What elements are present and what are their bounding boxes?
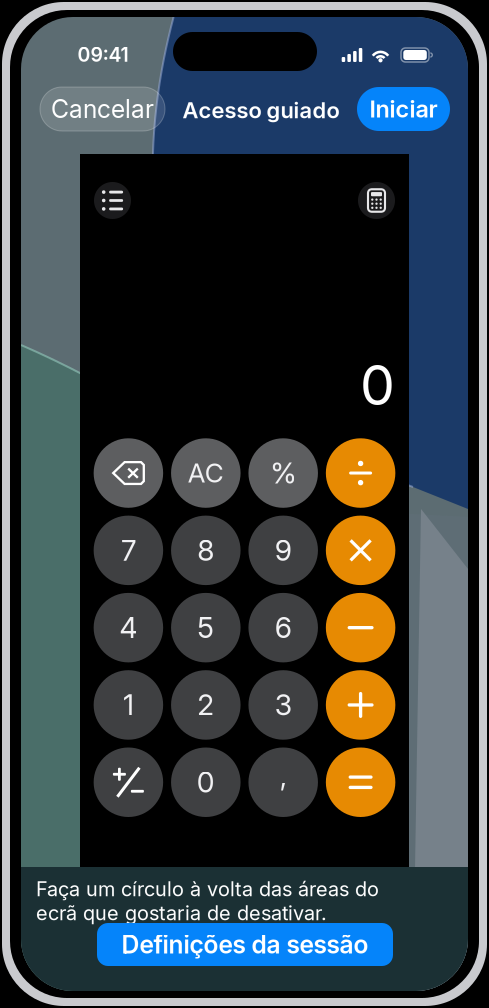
button[interactable]: 6 <box>248 593 318 662</box>
button[interactable]: AC <box>171 438 241 508</box>
staticText: Definições da sessão <box>121 929 368 959</box>
staticText: 6 <box>275 610 292 645</box>
button[interactable] <box>326 438 395 508</box>
button[interactable]: , <box>248 747 318 817</box>
staticText: % <box>270 456 296 490</box>
button[interactable]: Cancelar <box>40 87 165 131</box>
staticText: AC <box>188 457 224 489</box>
staticText: 2 <box>197 688 214 722</box>
button[interactable] <box>326 593 395 662</box>
button[interactable] <box>94 438 163 508</box>
button[interactable]: 9 <box>248 516 318 585</box>
button[interactable] <box>326 516 395 585</box>
button[interactable]: Iniciar <box>357 87 450 131</box>
button[interactable]: % <box>248 438 318 508</box>
staticText: Faça um círculo à volta das áreas do ecr… <box>36 877 379 925</box>
button[interactable]: 8 <box>171 516 241 585</box>
staticText: 7 <box>121 533 136 568</box>
button[interactable]: 3 <box>248 670 318 740</box>
button[interactable]: 0 <box>171 747 241 817</box>
staticText: 0 <box>360 351 395 418</box>
staticText: 1 <box>123 688 134 722</box>
staticText: Acesso guiado <box>182 97 339 124</box>
button[interactable]: History <box>94 182 131 219</box>
staticText: 0 <box>197 765 215 799</box>
button[interactable]: Definições da sessão <box>97 923 393 966</box>
button[interactable]: Calculator keypad <box>358 182 395 219</box>
staticText: , <box>280 758 287 792</box>
button[interactable] <box>326 747 395 817</box>
staticText: 3 <box>275 688 292 722</box>
button[interactable]: 7 <box>94 516 163 585</box>
staticText: 4 <box>119 610 137 645</box>
staticText: 9 <box>275 533 292 568</box>
staticText: Iniciar <box>369 95 437 123</box>
staticText: Cancelar <box>51 94 154 124</box>
button[interactable]: 1 <box>94 670 163 740</box>
staticText: 09:41 <box>77 43 128 67</box>
button[interactable] <box>326 670 395 740</box>
button[interactable] <box>94 747 163 817</box>
button[interactable]: 5 <box>171 593 241 662</box>
staticText: 5 <box>197 610 214 645</box>
staticText: 8 <box>197 533 214 568</box>
button[interactable]: 2 <box>171 670 241 740</box>
button[interactable]: 4 <box>94 593 163 662</box>
